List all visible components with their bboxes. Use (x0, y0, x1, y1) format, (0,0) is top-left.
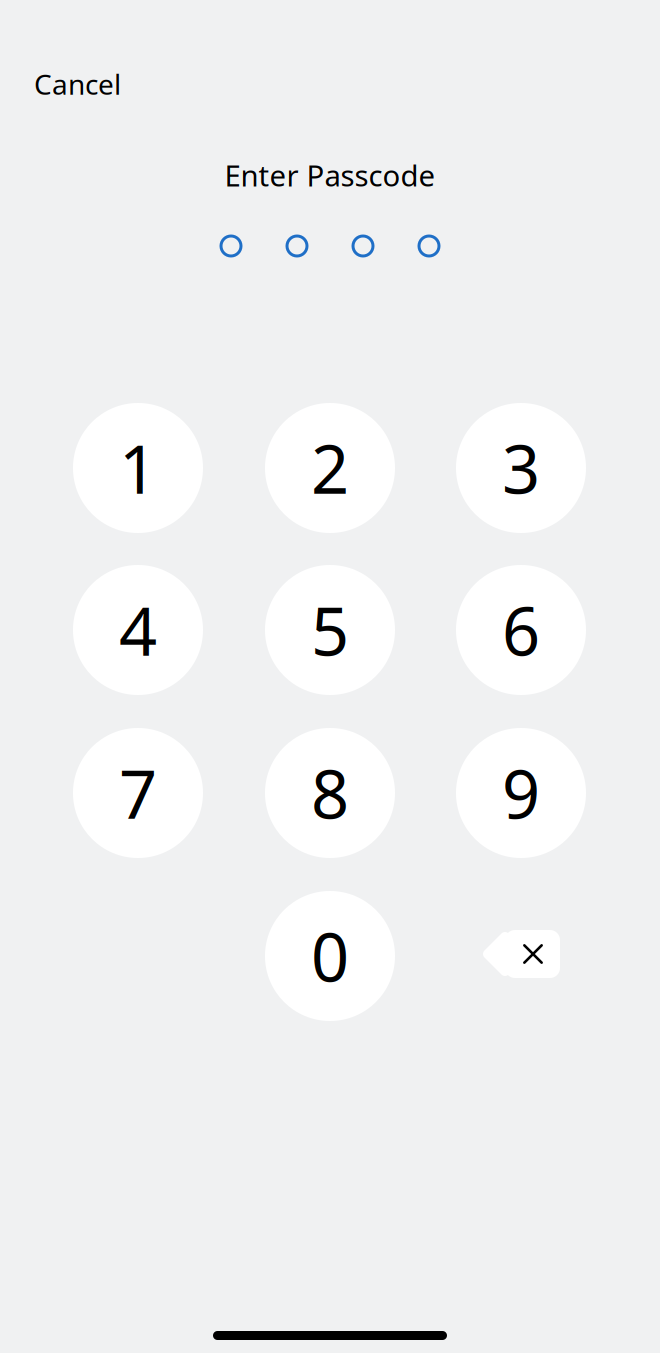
button[interactable]: 9 (456, 728, 586, 858)
button[interactable]: 7 (73, 728, 203, 858)
button[interactable]: 1 (73, 403, 203, 533)
staticText: 1 (119, 424, 157, 512)
button[interactable]: Delete (483, 930, 560, 978)
staticText: 2 (311, 424, 349, 512)
button[interactable]: 5 (265, 565, 395, 695)
button[interactable]: Cancel (28, 59, 127, 109)
button[interactable]: 4 (73, 565, 203, 695)
staticText: Enter Passcode (224, 155, 435, 194)
staticText: 8 (311, 749, 349, 837)
button[interactable]: 2 (265, 403, 395, 533)
staticText: Cancel (34, 65, 121, 103)
staticText: 9 (502, 749, 540, 837)
staticText: 3 (502, 424, 540, 512)
staticText: 0 (311, 912, 349, 1000)
staticText: 6 (502, 586, 540, 674)
button[interactable]: 6 (456, 565, 586, 695)
button[interactable]: 3 (456, 403, 586, 533)
staticText: 4 (119, 586, 157, 674)
button[interactable]: 8 (265, 728, 395, 858)
staticText: 7 (119, 749, 157, 837)
button[interactable]: 0 (265, 891, 395, 1021)
staticText: 5 (311, 586, 349, 674)
